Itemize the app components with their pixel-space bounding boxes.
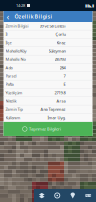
- staticText: İl: [5, 32, 7, 37]
- staticText: Yüzölçüm: [5, 90, 22, 95]
- staticText: Kullanım: [5, 115, 20, 120]
- staticText: ▮▮◣▮: [85, 3, 94, 8]
- staticText: Zemin Bilgisi: [5, 23, 28, 29]
- staticText: Parsel: [5, 73, 16, 79]
- staticText: Pafta: [5, 82, 13, 87]
- staticText: Taşınmaz Bilgileri: [29, 126, 61, 132]
- staticText: Mahalle/Köy: [5, 48, 26, 54]
- staticText: 39 ve 58 Listesi: [39, 23, 65, 29]
- staticText: Zemin Tip: [5, 107, 22, 112]
- staticText: 284: [59, 65, 65, 70]
- button[interactable]: Location: [65, 189, 80, 202]
- staticText: İlçe: [5, 40, 11, 45]
- staticText: Kiraz: [56, 40, 65, 45]
- button[interactable]: Basemap: [49, 189, 65, 202]
- staticText: Özellik Bilgisi: [14, 13, 52, 20]
- staticText: Ada: [5, 65, 12, 70]
- staticText: Mahalle No: [5, 57, 25, 62]
- staticText: Ana Taşınmaz: [40, 107, 65, 112]
- staticText: 287/93: [54, 57, 65, 62]
- staticText: Çorlu: [55, 32, 65, 37]
- staticText: Nitelik: [5, 98, 16, 104]
- staticText: ‹: [6, 10, 9, 23]
- button[interactable]: Taşınmaz Bilgileri: [3, 122, 92, 136]
- staticText: Süleyman: [48, 48, 65, 54]
- staticText: Arsa: [56, 98, 65, 104]
- button[interactable]: Layers: [34, 189, 49, 202]
- staticText: E: [63, 82, 65, 87]
- button[interactable]: ‹: [3, 11, 92, 22]
- staticText: 14:28: [16, 3, 25, 8]
- staticText: 7: [63, 73, 65, 79]
- staticText: 2719.8: [54, 90, 65, 95]
- staticText: İmar Uyg.: [47, 115, 65, 120]
- button[interactable]: Measure: [80, 189, 96, 202]
